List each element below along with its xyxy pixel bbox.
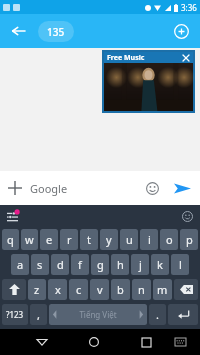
- button[interactable]: z: [28, 279, 46, 300]
- staticText: t: [87, 232, 91, 247]
- button[interactable]: Backspace: [174, 279, 198, 300]
- button[interactable]: l: [171, 254, 189, 275]
- button[interactable]: o: [160, 229, 178, 250]
- button[interactable]: g: [91, 254, 109, 275]
- button[interactable]: ?123: [2, 304, 28, 325]
- button[interactable]: Google: [30, 171, 138, 205]
- button[interactable]: e: [40, 229, 58, 250]
- staticText: Tiếng Việt: [79, 309, 117, 320]
- button[interactable]: i: [140, 229, 158, 250]
- staticText: o: [166, 232, 173, 247]
- staticText: Free Music: [107, 53, 145, 63]
- button[interactable]: t: [80, 229, 98, 250]
- button[interactable]: Emoji keyboard: [180, 209, 194, 223]
- button[interactable]: q: [2, 229, 19, 250]
- button[interactable]: f: [71, 254, 89, 275]
- button[interactable]: j: [131, 254, 149, 275]
- staticText: y: [106, 232, 112, 247]
- staticText: n: [138, 282, 145, 297]
- button[interactable]: b: [111, 279, 130, 300]
- staticText: l: [179, 257, 182, 272]
- staticText: j: [139, 257, 142, 272]
- button[interactable]: Home: [81, 329, 107, 355]
- button[interactable]: v: [90, 279, 109, 300]
- staticText: s: [37, 257, 43, 272]
- staticText: x: [55, 282, 61, 297]
- staticText: k: [157, 257, 163, 272]
- button[interactable]: c: [69, 279, 88, 300]
- staticText: ,: [37, 307, 40, 322]
- button[interactable]: p: [180, 229, 198, 250]
- button[interactable]: Emoji: [138, 174, 166, 202]
- button[interactable]: Shift: [2, 279, 26, 300]
- staticText: u: [126, 232, 133, 247]
- staticText: v: [97, 282, 103, 297]
- staticText: h: [117, 257, 124, 272]
- staticText: g: [97, 257, 104, 272]
- button[interactable]: Enter: [168, 304, 198, 325]
- button[interactable]: Back: [29, 329, 55, 355]
- button[interactable]: k: [151, 254, 169, 275]
- button[interactable]: ,: [30, 304, 47, 325]
- button[interactable]: s: [31, 254, 49, 275]
- button[interactable]: h: [111, 254, 129, 275]
- staticText: f: [78, 257, 82, 272]
- staticText: b: [117, 282, 124, 297]
- staticText: i: [148, 232, 151, 247]
- staticText: c: [76, 282, 82, 297]
- staticText: m: [157, 282, 168, 297]
- button[interactable]: Back: [6, 19, 30, 43]
- button[interactable]: .: [149, 304, 166, 325]
- staticText: .: [156, 307, 159, 322]
- button[interactable]: Recents: [133, 329, 159, 355]
- staticText: 3:36: [181, 2, 197, 13]
- button[interactable]: Tiếng Việt: [49, 304, 147, 325]
- button[interactable]: r: [60, 229, 78, 250]
- staticText: p: [186, 232, 193, 247]
- button[interactable]: Free Music: [104, 52, 193, 111]
- staticText: Google: [30, 181, 68, 196]
- staticText: ?123: [6, 309, 24, 320]
- button[interactable]: Hide keyboard: [168, 330, 192, 354]
- staticText: a: [17, 257, 24, 272]
- staticText: 135: [47, 25, 65, 39]
- button[interactable]: x: [48, 279, 67, 300]
- button[interactable]: Close ad: [181, 53, 190, 62]
- button[interactable]: n: [132, 279, 151, 300]
- button[interactable]: y: [100, 229, 118, 250]
- button[interactable]: Send: [166, 172, 198, 204]
- staticText: w: [25, 232, 34, 247]
- button[interactable]: Add: [168, 18, 194, 44]
- button[interactable]: Keyboard settings: [5, 209, 19, 223]
- staticText: e: [46, 232, 53, 247]
- button[interactable]: Add attachment: [0, 173, 30, 203]
- staticText: z: [34, 282, 40, 297]
- button[interactable]: u: [120, 229, 138, 250]
- button[interactable]: m: [153, 279, 172, 300]
- button[interactable]: a: [11, 254, 29, 275]
- button[interactable]: d: [51, 254, 69, 275]
- button[interactable]: w: [21, 229, 38, 250]
- button[interactable]: 135: [38, 21, 74, 42]
- staticText: q: [7, 232, 14, 247]
- staticText: d: [57, 257, 64, 272]
- staticText: r: [67, 232, 72, 247]
